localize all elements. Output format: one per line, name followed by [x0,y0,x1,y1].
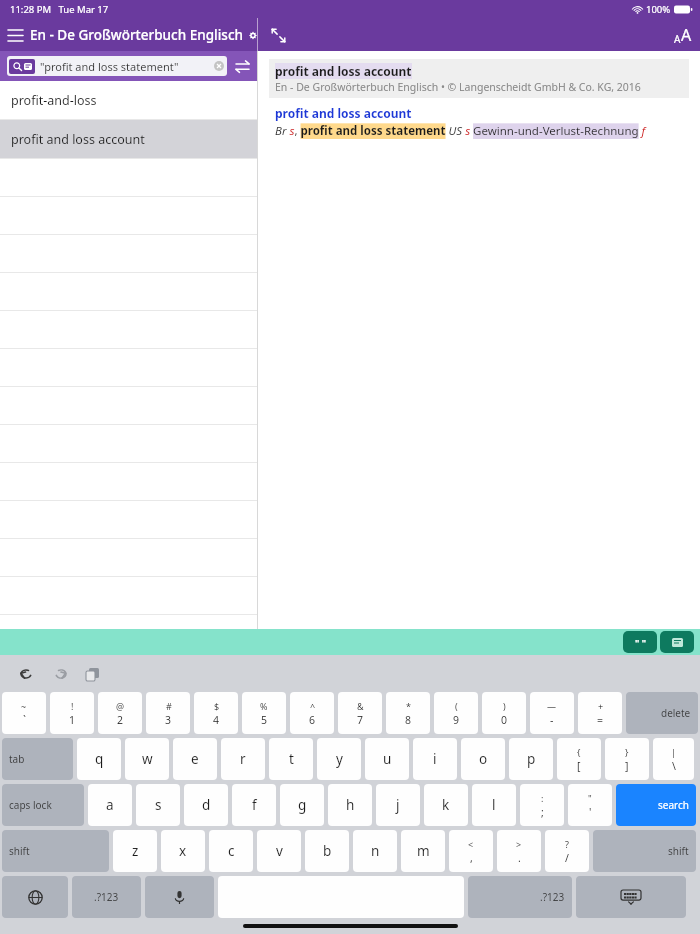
button[interactable]: Language [2,876,68,918]
button[interactable]: search [616,784,696,826]
staticText: h [346,796,355,814]
button[interactable]: r [221,738,265,780]
button[interactable]: Hide keyboard [576,876,686,918]
button[interactable]: ? [545,830,589,872]
button[interactable]: < [449,830,493,872]
button[interactable]: n [353,830,397,872]
button[interactable]: ! [50,692,94,734]
staticText: ! [71,700,74,712]
button[interactable]: h [328,784,372,826]
staticText: e [191,750,199,768]
button[interactable]: | [653,738,694,780]
button[interactable]: — [530,692,574,734]
staticText: - [550,713,554,727]
button[interactable]: Settings [249,23,257,47]
button[interactable]: c [209,830,253,872]
button[interactable]: Clear [211,58,227,74]
button[interactable]: p [509,738,553,780]
staticText: j [396,796,400,814]
button[interactable]: delete [626,692,698,734]
button[interactable]: m [401,830,445,872]
button[interactable]: z [113,830,157,872]
button[interactable]: Voice input [145,876,214,918]
button[interactable]: : [520,784,564,826]
staticText: 11:28 PM Tue Mar 17 [10,3,109,16]
staticText: 6 [309,713,316,727]
button[interactable]: Redo [46,660,74,688]
button[interactable]: ( [434,692,478,734]
button[interactable]: i [413,738,457,780]
button[interactable]: w [125,738,169,780]
button[interactable]: { [557,738,601,780]
button[interactable]: } [605,738,649,780]
button[interactable]: # [146,692,190,734]
button[interactable]: ) [482,692,526,734]
button[interactable]: * [386,692,430,734]
button[interactable]: g [280,784,324,826]
button[interactable]: + [578,692,622,734]
button[interactable]: shift [2,830,109,872]
staticText: l [492,796,496,814]
button[interactable]: k [424,784,468,826]
staticText: z [132,842,139,860]
button[interactable]: Quotes [623,631,657,653]
button[interactable]: " [568,784,612,826]
staticText: " " [635,636,646,648]
button[interactable]: Keyboard options [660,631,694,653]
staticText: i [433,750,437,768]
staticText: " [588,792,592,804]
button[interactable]: u [365,738,409,780]
button[interactable]: "profit and loss statement" [7,56,227,76]
button[interactable]: caps lock [2,784,84,826]
button[interactable]: Text size [674,24,692,46]
staticText: m [417,842,430,860]
staticText: k [442,796,450,814]
button[interactable]: Swap languages [227,51,257,81]
staticText: % [260,700,268,712]
button[interactable]: t [269,738,313,780]
button[interactable]: a [88,784,132,826]
staticText: y [336,750,343,768]
button[interactable]: f [232,784,276,826]
button[interactable]: % [242,692,286,734]
button[interactable]: q [77,738,121,780]
staticText: caps lock [9,798,52,812]
button[interactable]: Paste [78,660,106,688]
staticText: d [202,796,211,814]
staticText: shift [668,844,689,858]
button[interactable]: s [136,784,180,826]
button[interactable]: v [257,830,301,872]
button[interactable]: Menu [0,20,30,50]
button[interactable]: .?123 [72,876,141,918]
button[interactable]: @ [98,692,142,734]
staticText: 4 [213,713,220,727]
button[interactable]: y [317,738,361,780]
button[interactable]: Undo [12,660,40,688]
button[interactable]: > [497,830,541,872]
button[interactable]: profit and loss account [0,120,257,158]
button[interactable]: ~ [2,692,46,734]
button[interactable]: .?123 [468,876,572,918]
button[interactable]: j [376,784,420,826]
button[interactable]: ^ [290,692,334,734]
staticText: . [518,851,521,865]
button[interactable]: shift [593,830,696,872]
button[interactable]: b [305,830,349,872]
button[interactable]: tab [2,738,73,780]
button[interactable]: & [338,692,382,734]
staticText: c [228,842,235,860]
button[interactable]: $ [194,692,238,734]
button[interactable]: x [161,830,205,872]
button[interactable]: d [184,784,228,826]
staticText: 2 [117,713,124,727]
button[interactable]: profit-and-loss [0,81,257,119]
button[interactable]: Expand [264,21,292,49]
staticText: 3 [165,713,172,727]
staticText: 8 [405,713,412,727]
button[interactable]: o [461,738,505,780]
button[interactable]: e [173,738,217,780]
staticText: ] [625,759,629,773]
button[interactable]: l [472,784,516,826]
staticText: ) [503,700,506,712]
